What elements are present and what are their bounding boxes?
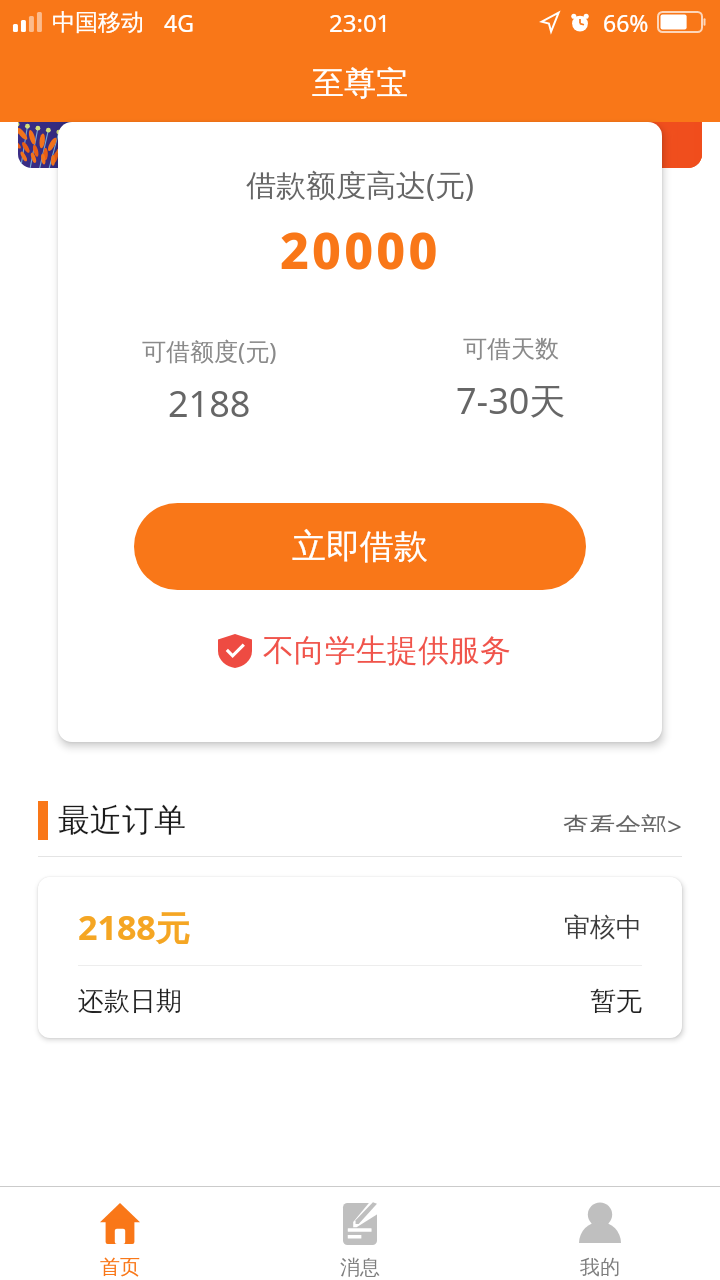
staticText: 可借额度(元) bbox=[142, 334, 277, 367]
button[interactable]: 订单 2188元 审核中 bbox=[38, 877, 682, 1038]
staticText: 查看全部> bbox=[563, 808, 682, 832]
staticText: 2188 bbox=[168, 379, 251, 428]
button[interactable]: 我的 bbox=[480, 1187, 720, 1280]
staticText: 立即借款 bbox=[292, 525, 428, 568]
staticText: 消息 bbox=[340, 1255, 380, 1280]
staticText: 借款额度高达(元) bbox=[246, 164, 474, 205]
staticText: 至尊宝 bbox=[312, 63, 408, 103]
button[interactable]: 查看全部订单 bbox=[543, 800, 682, 840]
button[interactable]: 首页 bbox=[0, 1187, 240, 1280]
staticText: 20000 bbox=[280, 216, 441, 284]
staticText: 66% bbox=[603, 7, 649, 38]
button[interactable]: 消息 bbox=[240, 1187, 480, 1280]
staticText: 4G bbox=[164, 7, 194, 38]
button[interactable]: 立即借款 bbox=[134, 503, 586, 590]
staticText: 最近订单 bbox=[58, 800, 186, 840]
staticText: 审核中 bbox=[564, 911, 642, 944]
staticText: 还款日期 bbox=[78, 985, 182, 1018]
staticText: 可借天数 bbox=[463, 334, 559, 364]
staticText: 首页 bbox=[100, 1255, 140, 1280]
staticText: 暂无 bbox=[590, 985, 642, 1018]
staticText: 中国移动 bbox=[52, 8, 144, 37]
staticText: 不向学生提供服务 bbox=[263, 631, 511, 670]
staticText: 7-30天 bbox=[456, 376, 566, 425]
staticText: 23:01 bbox=[329, 6, 391, 39]
staticText: 2188元 bbox=[78, 904, 190, 950]
staticText: 我的 bbox=[580, 1255, 620, 1280]
